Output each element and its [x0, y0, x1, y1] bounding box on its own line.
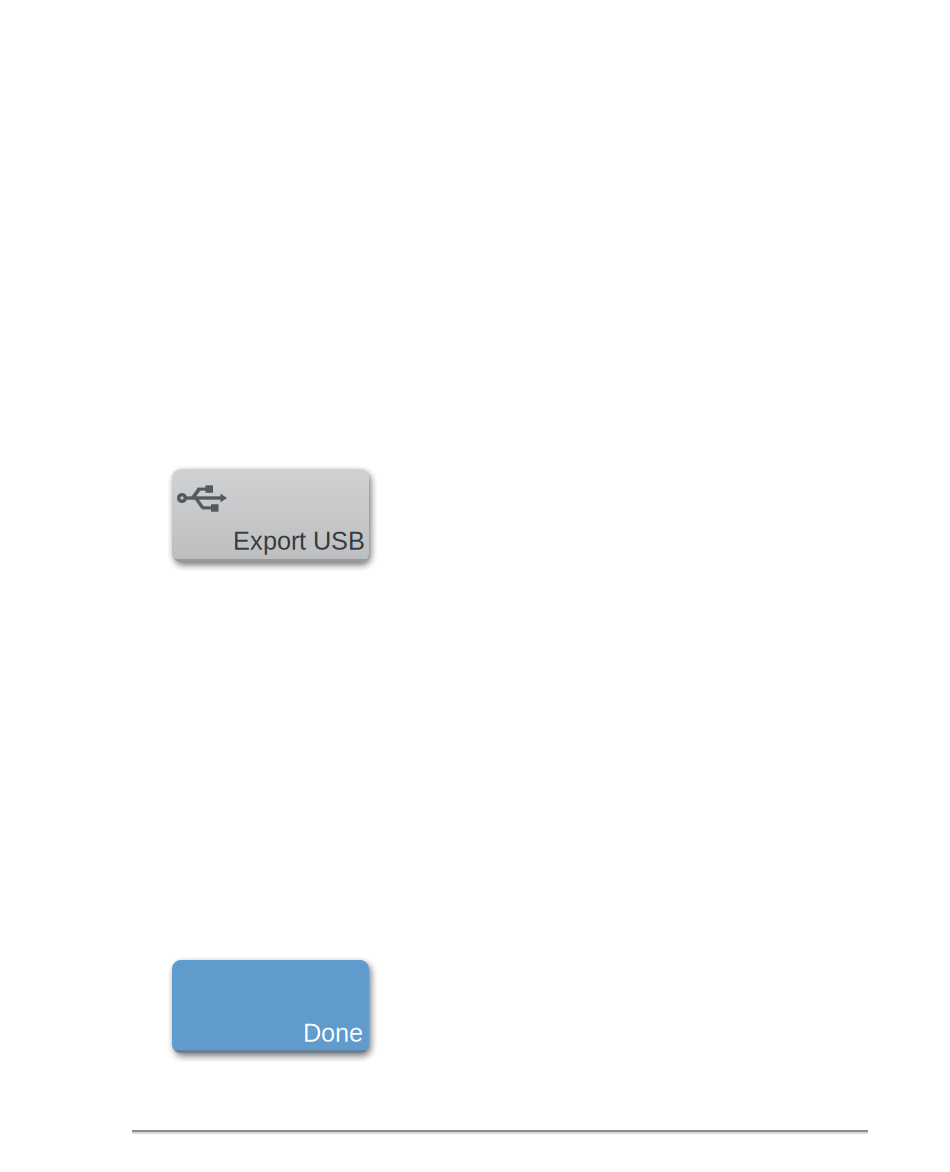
button[interactable]: Export USB: [172, 469, 369, 562]
staticText: Export USB: [233, 527, 365, 555]
staticText: Done: [303, 1019, 363, 1047]
button[interactable]: Done: [172, 960, 369, 1053]
